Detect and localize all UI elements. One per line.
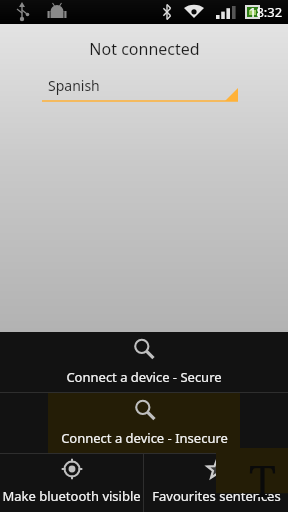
staticText: Connect a device - Secure: [66, 368, 222, 386]
other: Make bluetooth visible: [61, 458, 83, 480]
button[interactable]: Favourites sentences: [144, 454, 288, 512]
staticText: Spanish: [48, 76, 100, 95]
other: Search: [133, 338, 155, 360]
staticText: T: [249, 450, 276, 508]
other: Search: [134, 399, 156, 421]
staticText: Make bluetooth visible: [2, 487, 141, 505]
staticText: Connect a device - Insecure: [61, 429, 228, 447]
staticText: Not connected: [89, 38, 200, 60]
button[interactable]: Spanish: [42, 76, 238, 106]
other: Favourites sentences: [206, 458, 228, 480]
button[interactable]: Make bluetooth visible: [0, 454, 143, 512]
button[interactable]: Search: [0, 393, 288, 453]
staticText: Favourites sentences: [152, 487, 281, 505]
staticText: 18:32: [249, 3, 283, 21]
button[interactable]: Search: [0, 332, 288, 392]
